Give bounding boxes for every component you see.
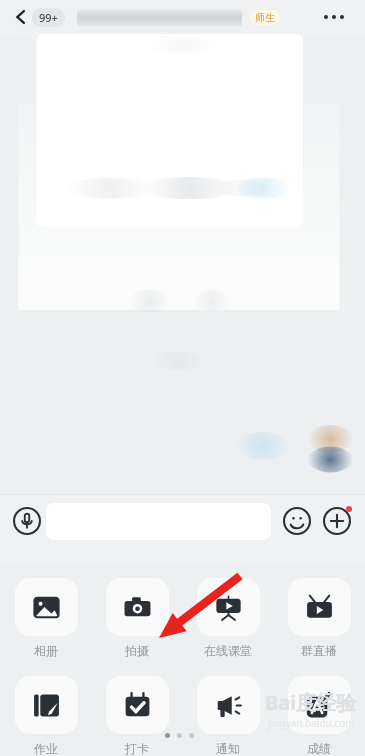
button[interactable]: Emoji (279, 503, 315, 539)
button[interactable]: 师生 (255, 11, 275, 24)
staticText: Bai度经验 (265, 689, 357, 716)
button[interactable]: 拍摄 (105, 578, 169, 658)
button[interactable]: More functions (319, 503, 355, 539)
button[interactable]: 99+ (39, 10, 58, 25)
button[interactable]: Back (6, 2, 36, 32)
staticText: 作业 (34, 741, 58, 756)
button[interactable]: 打卡 (105, 676, 169, 756)
button[interactable]: 群直播 (287, 578, 351, 658)
button[interactable]: 作业 (14, 676, 78, 756)
button[interactable]: 相册 (14, 578, 78, 658)
staticText: 拍摄 (125, 643, 149, 658)
staticText: 相册 (34, 643, 58, 658)
staticText: 通知 (216, 741, 240, 756)
button[interactable]: More options (317, 0, 351, 34)
staticText: 打卡 (125, 741, 149, 756)
staticText: 99+ (39, 10, 58, 25)
button[interactable]: 成绩 (287, 676, 351, 756)
button[interactable]: Voice input (8, 502, 46, 540)
staticText: 群直播 (301, 643, 337, 658)
staticText: 成绩 (307, 741, 331, 756)
staticText: 在线课堂 (204, 643, 252, 658)
button[interactable]: 在线课堂 (196, 578, 260, 658)
staticText: jingyan.baidu.com (268, 716, 355, 730)
button[interactable]: 通知 (196, 676, 260, 756)
staticText: 师生 (255, 11, 275, 24)
